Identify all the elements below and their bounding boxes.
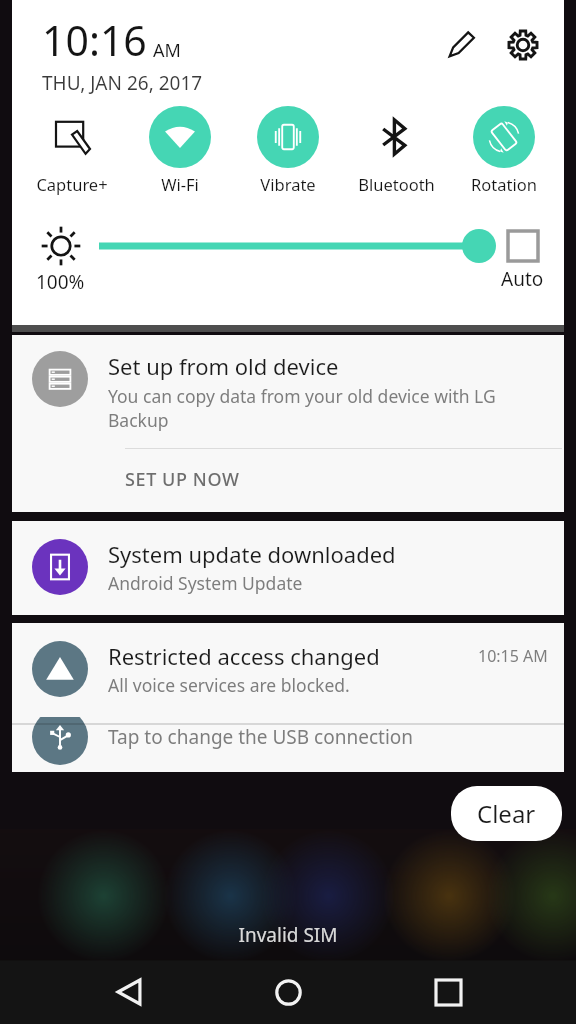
staticText: SET UP NOW xyxy=(125,467,240,492)
button[interactable]: Recent apps xyxy=(417,961,479,1023)
button[interactable]: Clear xyxy=(451,786,562,841)
staticText: 10:16 xyxy=(42,12,147,68)
staticText: 10:15 AM xyxy=(478,645,548,667)
staticText: Vibrate xyxy=(260,173,316,195)
staticText: Auto xyxy=(501,266,544,292)
button[interactable]: Restricted access changed xyxy=(12,623,564,717)
staticText: Android System Update xyxy=(108,571,303,595)
staticText: 100% xyxy=(36,269,85,295)
button[interactable]: Set up from old device xyxy=(12,335,564,512)
staticText: System update downloaded xyxy=(108,539,396,569)
button[interactable]: Home xyxy=(257,961,319,1023)
button[interactable]: Edit quick settings xyxy=(438,22,484,68)
button[interactable]: Tap to change the USB connection xyxy=(12,724,564,772)
staticText: Invalid SIM xyxy=(238,922,338,948)
staticText: All voice services are blocked. xyxy=(108,673,350,697)
staticText: Bluetooth xyxy=(358,173,435,195)
staticText: Set up from old device xyxy=(108,351,339,381)
button[interactable]: Back xyxy=(98,961,160,1023)
staticText: THU, JAN 26, 2017 xyxy=(42,70,203,96)
staticText: You can copy data from your old device w… xyxy=(108,384,548,432)
button[interactable]: Brightness xyxy=(99,225,495,267)
staticText: Clear xyxy=(477,797,536,830)
staticText: AM xyxy=(153,38,181,63)
staticText: Tap to change the USB connection xyxy=(108,724,414,750)
button[interactable]: Settings xyxy=(500,22,546,68)
button[interactable]: Bluetooth xyxy=(342,102,450,195)
staticText: Rotation xyxy=(471,173,537,195)
button[interactable]: System update downloaded xyxy=(12,521,564,615)
staticText: Capture+ xyxy=(36,173,108,195)
button[interactable]: Auto xyxy=(501,225,544,292)
staticText: Restricted access changed xyxy=(108,641,478,671)
button[interactable]: Capture+ xyxy=(18,102,126,195)
button[interactable]: Vibrate xyxy=(234,102,342,195)
button[interactable]: Rotation xyxy=(450,102,558,195)
button[interactable]: SET UP NOW xyxy=(12,449,564,512)
staticText: Wi-Fi xyxy=(161,173,199,195)
button[interactable]: Wi-Fi xyxy=(126,102,234,195)
